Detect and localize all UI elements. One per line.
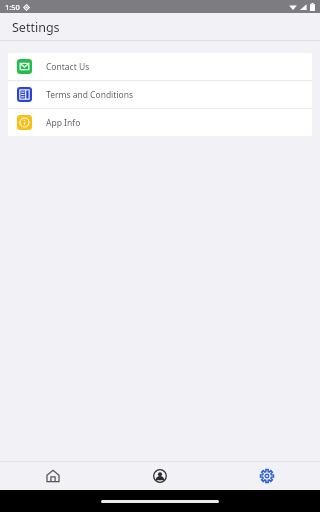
button[interactable]: Home xyxy=(0,462,106,490)
staticText: App Info xyxy=(46,117,81,129)
button[interactable]: Contact Us xyxy=(8,53,312,80)
button[interactable]: Profile xyxy=(106,462,213,490)
staticText: 1:50 xyxy=(5,2,20,12)
button[interactable]: App Info xyxy=(8,109,312,136)
staticText: Settings xyxy=(12,19,60,36)
staticText: Contact Us xyxy=(46,61,90,73)
button[interactable]: Terms and Conditions xyxy=(8,81,312,108)
button[interactable]: Settings xyxy=(213,462,320,490)
staticText: Terms and Conditions xyxy=(46,89,134,101)
